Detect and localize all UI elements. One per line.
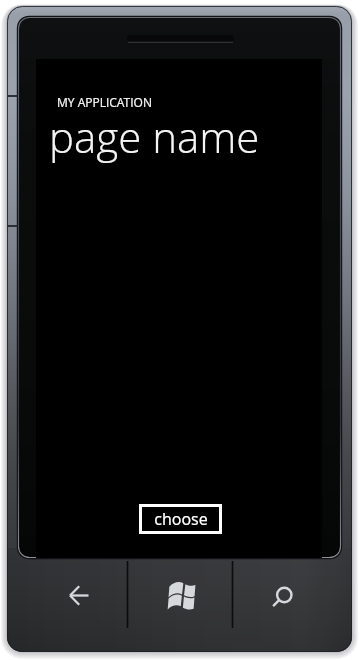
staticText: choose <box>154 508 208 530</box>
button[interactable]: Start <box>128 560 233 628</box>
button[interactable]: Back <box>18 560 128 628</box>
staticText: page name <box>49 108 260 165</box>
staticText: MY APPLICATION <box>57 94 152 110</box>
button[interactable]: Search <box>233 560 342 628</box>
button[interactable]: choose <box>139 504 222 534</box>
